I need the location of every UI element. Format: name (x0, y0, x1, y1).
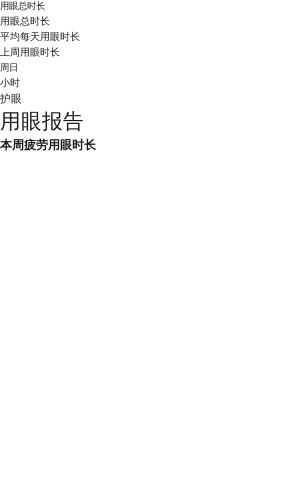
staticText: 上周用眼时长 (0, 46, 60, 59)
staticText: 周日 (0, 61, 18, 73)
staticText: 用眼总时长 (0, 15, 50, 27)
staticText: 平均每天用眼时长 (0, 30, 80, 43)
staticText: 小时 (0, 76, 20, 89)
staticText: 用眼总时长 (0, 0, 45, 12)
staticText: 护眼 (0, 92, 22, 105)
staticText: 本周疲劳用眼时长 (0, 137, 96, 152)
staticText: 用眼报告 (0, 108, 84, 134)
